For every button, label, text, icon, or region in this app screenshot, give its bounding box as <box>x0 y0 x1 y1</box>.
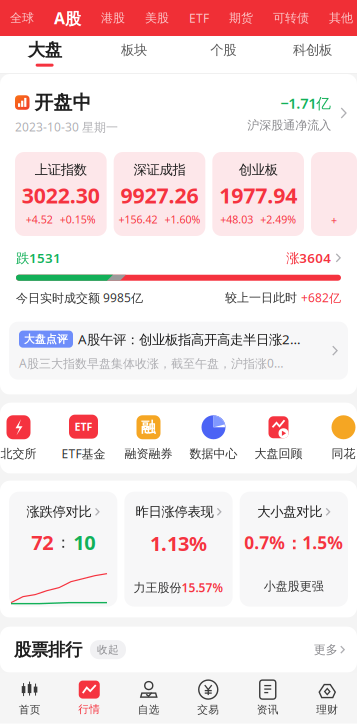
staticText: 个股 <box>210 42 236 58</box>
staticText: 小盘股更强 <box>264 579 324 594</box>
staticText: 港股 <box>101 11 125 25</box>
staticText: 理财 <box>316 703 338 716</box>
button[interactable]: 大小盘对比 <box>240 492 348 607</box>
staticText: A股 <box>54 7 81 29</box>
button[interactable]: 大盘 <box>0 36 89 73</box>
button[interactable]: 融 <box>116 415 181 461</box>
staticText: 交易 <box>197 703 219 716</box>
button[interactable]: 北交所 <box>0 415 51 461</box>
staticText: 收起 <box>97 643 119 656</box>
button[interactable]: 大盘回顾 <box>246 415 311 461</box>
staticText: 大小盘对比 <box>257 504 322 520</box>
staticText: A股午评：创业板指高开高走半日涨2… <box>78 330 301 348</box>
staticText: 大盘回顾 <box>254 446 302 461</box>
staticText: 沪深股通净流入 <box>247 118 331 133</box>
staticText: 可转债 <box>273 11 309 25</box>
staticText: ETF <box>189 10 209 26</box>
button[interactable]: 可转债 <box>263 0 319 36</box>
staticText: 创业板 <box>239 162 278 178</box>
button[interactable]: 板块 <box>89 36 178 73</box>
staticText: 美股 <box>145 11 169 25</box>
staticText: 行情 <box>78 703 100 716</box>
staticText: + <box>331 213 337 227</box>
staticText: 资讯 <box>257 703 279 716</box>
button[interactable]: 昨日涨停表现 <box>124 492 233 607</box>
button[interactable]: 更多 <box>314 642 345 657</box>
staticText: 72 <box>31 529 53 556</box>
staticText: 15.57% <box>181 580 223 596</box>
button[interactable]: 科创板 <box>268 36 357 73</box>
staticText: +156.42 <box>118 212 157 226</box>
staticText: 上证指数 <box>35 162 87 178</box>
button[interactable]: ETF <box>179 0 219 36</box>
staticText: 同花 <box>331 446 355 461</box>
button[interactable]: 深证成指 <box>114 152 205 236</box>
staticText: 大盘点评 <box>24 333 68 346</box>
staticText: 今日实时成交额 9985亿 <box>16 290 143 306</box>
button[interactable]: 其他 <box>319 0 357 36</box>
button[interactable]: 数据中心 <box>181 415 246 461</box>
staticText: +4.52 <box>26 212 53 226</box>
staticText: +1.60% <box>164 212 200 226</box>
button[interactable]: 全球 <box>0 0 44 36</box>
button[interactable]: ETF <box>51 415 116 462</box>
staticText: 大盘 <box>28 39 62 61</box>
button[interactable]: 行情 <box>59 673 119 724</box>
staticText: 北交所 <box>0 446 36 461</box>
staticText: 融 <box>141 418 156 436</box>
staticText: 数据中心 <box>189 446 237 461</box>
staticText: 首页 <box>19 703 41 716</box>
staticText: 深证成指 <box>133 162 185 178</box>
staticText: 1977.94 <box>219 181 297 209</box>
staticText: 开盘中 <box>34 91 91 114</box>
staticText: 自选 <box>138 703 160 716</box>
staticText: 2023-10-30 星期一 <box>15 119 118 135</box>
staticText: 科创板 <box>293 42 332 58</box>
button[interactable]: 资讯 <box>238 673 297 724</box>
button[interactable]: 港股 <box>91 0 135 36</box>
staticText: 0.7%：1.5% <box>244 531 343 554</box>
staticText: 板块 <box>121 42 147 58</box>
staticText: 股票排行 <box>14 639 82 660</box>
staticText: +0.15% <box>60 212 96 226</box>
button[interactable]: 期货 <box>219 0 263 36</box>
staticText: 涨3604 <box>286 249 331 267</box>
staticText: 10 <box>73 529 95 556</box>
staticText: ： <box>55 532 71 552</box>
staticText: 期货 <box>229 11 253 25</box>
staticText: A股三大指数早盘集体收涨，截至午盘，沪指涨0… <box>19 355 283 371</box>
staticText: 涨跌停对比 <box>27 504 92 520</box>
staticText: 全球 <box>10 11 34 25</box>
staticText: 跌1531 <box>16 249 61 267</box>
button[interactable]: 涨跌停对比 <box>9 492 117 607</box>
button[interactable]: 个股 <box>178 36 268 73</box>
staticText: 更多 <box>314 642 338 657</box>
staticText: 融资融券 <box>124 446 172 461</box>
staticText: 昨日涨停表现 <box>135 504 213 520</box>
staticText: ETF <box>74 420 92 434</box>
button[interactable]: 同花 <box>311 415 357 461</box>
staticText: 力王股份 <box>133 580 181 595</box>
staticText: 9927.26 <box>120 181 198 209</box>
staticText: +2.49% <box>260 212 296 226</box>
staticText: 1.13% <box>150 530 207 557</box>
button[interactable]: 上证指数 <box>15 152 107 236</box>
staticText: 3022.30 <box>22 181 100 209</box>
staticText: 其他 <box>329 11 353 25</box>
staticText: +682亿 <box>301 290 341 306</box>
button[interactable]: 首页 <box>0 673 59 724</box>
button[interactable]: 自选 <box>119 673 178 724</box>
button[interactable]: 理财 <box>297 673 357 724</box>
button[interactable]: 美股 <box>135 0 179 36</box>
staticText: ETF基金 <box>61 446 105 462</box>
button[interactable]: 交易 <box>178 673 238 724</box>
staticText: +48.03 <box>220 212 253 226</box>
button[interactable]: 大盘点评 <box>0 306 357 395</box>
staticText: 较上一日此时 <box>225 290 301 305</box>
button[interactable]: 收起 <box>90 640 126 659</box>
staticText: −1.71亿 <box>280 93 331 113</box>
button[interactable]: A股 <box>44 0 91 36</box>
button[interactable]: 创业板 <box>212 152 304 236</box>
